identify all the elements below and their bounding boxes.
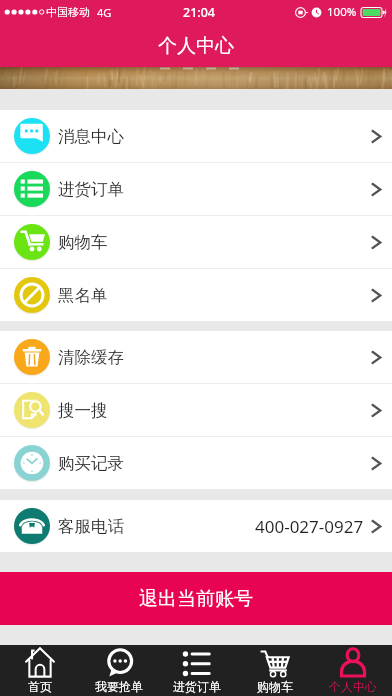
button[interactable]: 消息中心 (0, 110, 392, 162)
staticText: 清除缓存 (58, 347, 124, 368)
staticText: 进货订单 (173, 679, 221, 694)
staticText: 购物车 (58, 232, 108, 253)
staticText: 客服电话 (58, 516, 124, 537)
button[interactable]: 首页 (0, 645, 79, 696)
staticText: 购买记录 (58, 453, 124, 474)
staticText: 400-027-0927 (255, 515, 364, 538)
staticText: 中国移动 (46, 5, 90, 19)
staticText: 21:04 (183, 4, 216, 21)
staticText: 消息中心 (58, 126, 124, 147)
staticText: 个人中心 (329, 679, 377, 694)
button[interactable]: 我要抢单 (79, 645, 158, 696)
staticText: 个人中心 (158, 34, 234, 58)
staticText: 4G (97, 5, 112, 20)
button[interactable]: 购物车 (236, 645, 314, 696)
button[interactable]: 购物车 (0, 216, 392, 268)
button[interactable]: 进货订单 (0, 163, 392, 215)
button[interactable]: 清除缓存 (0, 331, 392, 383)
staticText: 首页 (28, 679, 52, 694)
staticText: 进货订单 (58, 179, 124, 200)
button[interactable]: 客服电话 (0, 500, 392, 552)
button[interactable]: 进货订单 (158, 645, 236, 696)
button[interactable]: 购买记录 (0, 437, 392, 489)
staticText: 搜一搜 (58, 400, 108, 421)
staticText: 100% (327, 4, 357, 20)
button[interactable]: 黑名单 (0, 269, 392, 321)
staticText: 黑名单 (58, 285, 108, 306)
button[interactable]: 个人中心 (314, 645, 392, 696)
button[interactable]: 搜一搜 (0, 384, 392, 436)
staticText: 我要抢单 (95, 679, 143, 694)
button[interactable]: 退出当前账号 (0, 572, 392, 625)
staticText: 退出当前账号 (139, 587, 253, 611)
staticText: 购物车 (257, 679, 293, 694)
